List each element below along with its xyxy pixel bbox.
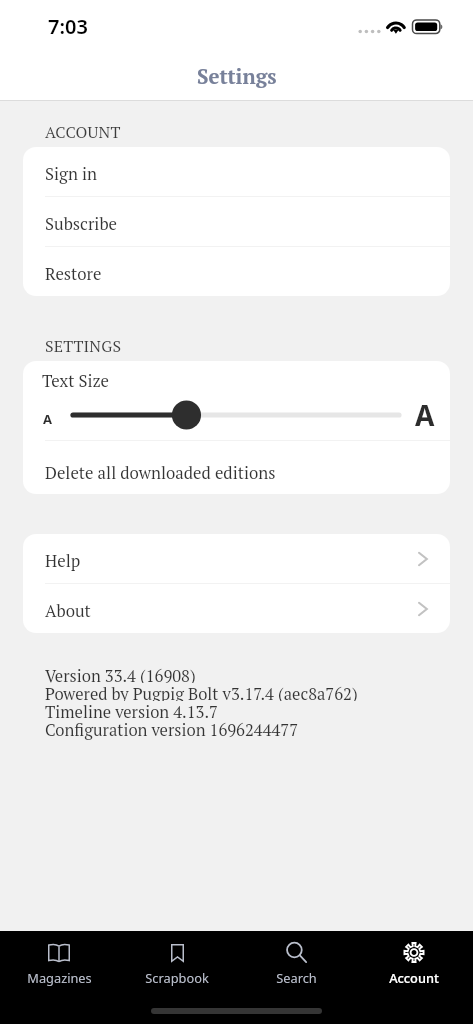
- button[interactable]: Delete all downloaded editions: [23, 441, 450, 494]
- button[interactable]: Account: [355, 931, 473, 986]
- staticText: Scrapbook: [145, 969, 209, 986]
- button[interactable]: Restore: [23, 247, 450, 296]
- button[interactable]: Search: [237, 931, 355, 986]
- staticText: Help: [45, 550, 81, 572]
- staticText: Powered by Pugpig Bolt v3.17.4 (aec8a762…: [45, 683, 358, 701]
- button[interactable]: Magazines: [0, 931, 118, 986]
- staticText: SETTINGS: [45, 335, 122, 356]
- staticText: Settings: [197, 63, 277, 90]
- staticText: A: [43, 410, 52, 428]
- staticText: Subscribe: [45, 213, 118, 235]
- button[interactable]: Scrapbook: [118, 931, 236, 986]
- staticText: Search: [276, 969, 317, 986]
- staticText: Version 33.4 (16908): [45, 665, 196, 683]
- staticText: Configuration version 1696244477: [45, 719, 299, 741]
- staticText: Delete all downloaded editions: [45, 462, 276, 484]
- staticText: Timeline version 4.13.7: [45, 701, 218, 719]
- staticText: 7:03: [48, 13, 88, 40]
- staticText: Text Size: [42, 370, 110, 392]
- button[interactable]: Help: [23, 534, 450, 584]
- staticText: Account: [389, 969, 439, 986]
- staticText: ACCOUNT: [45, 121, 121, 142]
- staticText: Magazines: [27, 969, 92, 986]
- staticText: Sign in: [45, 163, 97, 185]
- button[interactable]: Sign in: [23, 147, 450, 197]
- button[interactable]: About: [23, 584, 450, 633]
- staticText: Restore: [45, 263, 102, 285]
- button[interactable]: Subscribe: [23, 197, 450, 247]
- staticText: A: [415, 396, 435, 434]
- staticText: About: [45, 600, 91, 622]
